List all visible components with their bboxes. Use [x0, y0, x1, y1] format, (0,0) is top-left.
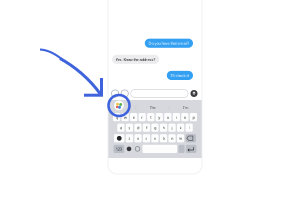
button[interactable]: n	[168, 134, 176, 142]
button[interactable]: o	[181, 113, 188, 121]
staticText: k	[180, 125, 182, 130]
staticText: The	[149, 105, 155, 110]
button[interactable]: u	[164, 113, 171, 121]
staticText: I'll check it!	[170, 73, 189, 78]
staticText: i	[176, 114, 177, 120]
button[interactable]: h	[160, 124, 167, 132]
staticText: e	[133, 114, 135, 120]
button[interactable]: s	[126, 124, 133, 132]
staticText: y	[158, 114, 160, 120]
button[interactable]: App Store apps	[107, 93, 131, 117]
staticText: c	[145, 136, 147, 141]
button[interactable]: Space	[142, 145, 177, 153]
button[interactable]: v	[151, 134, 159, 142]
button[interactable]: Delete	[185, 134, 196, 142]
staticText: l	[189, 125, 190, 130]
button[interactable]: Dictate	[134, 145, 141, 153]
button[interactable]: t	[147, 113, 154, 121]
staticText: d	[137, 125, 139, 130]
staticText: w	[124, 114, 127, 120]
staticText: f	[146, 125, 147, 130]
staticText: n	[171, 136, 173, 141]
button[interactable]: b	[160, 134, 167, 142]
button[interactable]: g	[151, 124, 159, 132]
button[interactable]: r	[139, 113, 146, 121]
staticText: p	[192, 114, 194, 120]
button[interactable]: m	[177, 134, 184, 142]
button[interactable]: w	[121, 113, 129, 121]
button[interactable]: e	[130, 113, 137, 121]
button[interactable]: Period	[178, 145, 185, 153]
staticText: m	[179, 136, 183, 141]
button[interactable]: Shift	[114, 134, 124, 142]
staticText: Yes. Know the address?	[116, 57, 156, 62]
button[interactable]: i	[173, 113, 180, 121]
staticText: h	[162, 125, 164, 130]
staticText: r	[141, 114, 143, 120]
staticText: Do you have that email?	[148, 41, 189, 46]
staticText: t	[150, 114, 151, 120]
staticText: v	[154, 136, 156, 141]
button[interactable]: y	[156, 113, 163, 121]
button[interactable]: j	[168, 124, 176, 132]
staticText: a	[120, 125, 122, 130]
button[interactable]: 123	[114, 145, 124, 153]
staticText: j	[172, 125, 173, 130]
button[interactable]: Send	[190, 90, 197, 97]
staticText: u	[167, 114, 169, 120]
button[interactable]: q	[113, 113, 120, 121]
staticText: I'm	[183, 105, 189, 110]
staticText: b	[162, 136, 164, 141]
staticText: g	[154, 125, 156, 130]
staticText: o	[184, 114, 186, 120]
staticText: 123	[116, 146, 122, 151]
button[interactable]: Emoji	[125, 145, 133, 153]
staticText: I	[121, 105, 122, 110]
button[interactable]: Apps	[121, 90, 128, 97]
button[interactable]: x	[134, 134, 141, 142]
button[interactable]: l	[185, 124, 193, 132]
staticText: x	[137, 136, 139, 141]
button[interactable]: k	[177, 124, 184, 132]
button[interactable]: z	[126, 134, 133, 142]
button[interactable]: a	[117, 124, 124, 132]
button[interactable]: d	[134, 124, 141, 132]
button[interactable]: f	[143, 124, 150, 132]
staticText: s	[128, 125, 130, 130]
button[interactable]: p	[190, 113, 197, 121]
button[interactable]: Return	[186, 145, 196, 153]
button[interactable]: c	[143, 134, 150, 142]
button[interactable]: Camera	[111, 90, 119, 97]
staticText: z	[128, 136, 130, 141]
staticText: q	[116, 114, 118, 120]
